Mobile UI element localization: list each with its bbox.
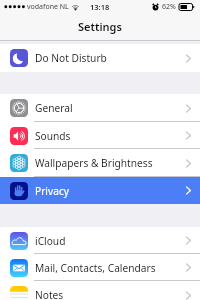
other: Do Not Disturb xyxy=(10,49,28,67)
other: iCloud xyxy=(10,232,28,250)
staticText: General xyxy=(35,101,73,115)
staticText: Privacy xyxy=(35,184,69,198)
staticText: Mail, Contacts, Calendars xyxy=(35,261,156,275)
button[interactable]: Notes xyxy=(0,281,200,300)
staticText: Settings xyxy=(78,19,122,34)
staticText: 62% xyxy=(162,2,176,12)
staticText: Do Not Disturb xyxy=(35,51,107,65)
staticText: Sounds xyxy=(35,129,71,143)
other: General xyxy=(10,99,28,117)
other: Mail, Contacts, Calendars xyxy=(10,259,28,277)
other: Wallpapers & Brightness xyxy=(10,154,28,172)
button[interactable]: iCloud xyxy=(0,227,200,254)
staticText: vodafone NL xyxy=(27,2,69,12)
other: Sounds xyxy=(10,127,28,145)
staticText: Notes xyxy=(35,288,64,300)
button[interactable]: Mail, Contacts, Calendars xyxy=(0,254,200,281)
other: Notes xyxy=(10,286,28,300)
button[interactable]: Sounds xyxy=(0,122,200,149)
staticText: Wallpapers & Brightness xyxy=(35,156,153,170)
staticText: iCloud xyxy=(35,234,66,248)
button[interactable]: Do Not Disturb xyxy=(0,44,200,72)
button[interactable]: Wallpapers & Brightness xyxy=(0,149,200,177)
other: Privacy xyxy=(10,182,28,200)
button[interactable]: General xyxy=(0,94,200,122)
button[interactable]: Privacy xyxy=(0,177,200,204)
staticText: 13:18 xyxy=(90,2,110,12)
